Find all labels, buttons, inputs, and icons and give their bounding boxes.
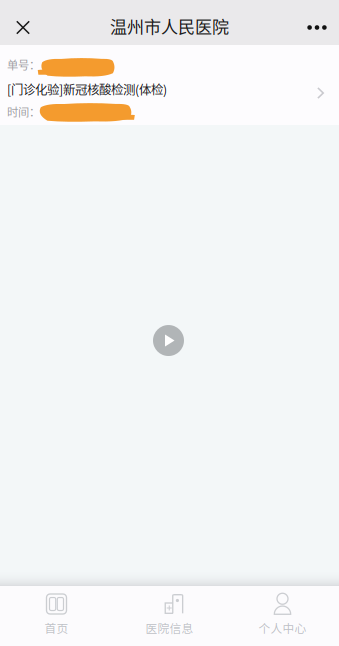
button[interactable]: More options xyxy=(293,7,339,45)
button[interactable]: Close xyxy=(0,7,44,45)
button[interactable]: 首页 xyxy=(0,583,113,646)
staticText: 单号： xyxy=(7,56,40,73)
staticText: [门诊化验]新冠核酸检测(体检) xyxy=(7,80,167,98)
button[interactable]: Play xyxy=(153,325,184,356)
staticText: 温州市人民医院 xyxy=(110,14,229,38)
button[interactable]: 医院信息 xyxy=(113,583,226,646)
staticText: 个人中心 xyxy=(258,619,306,636)
button[interactable]: 单号： xyxy=(0,45,339,125)
staticText: 时间： xyxy=(7,103,40,120)
staticText: 医院信息 xyxy=(145,619,193,636)
staticText: 首页 xyxy=(44,619,68,636)
button[interactable]: 个人中心 xyxy=(226,583,339,646)
